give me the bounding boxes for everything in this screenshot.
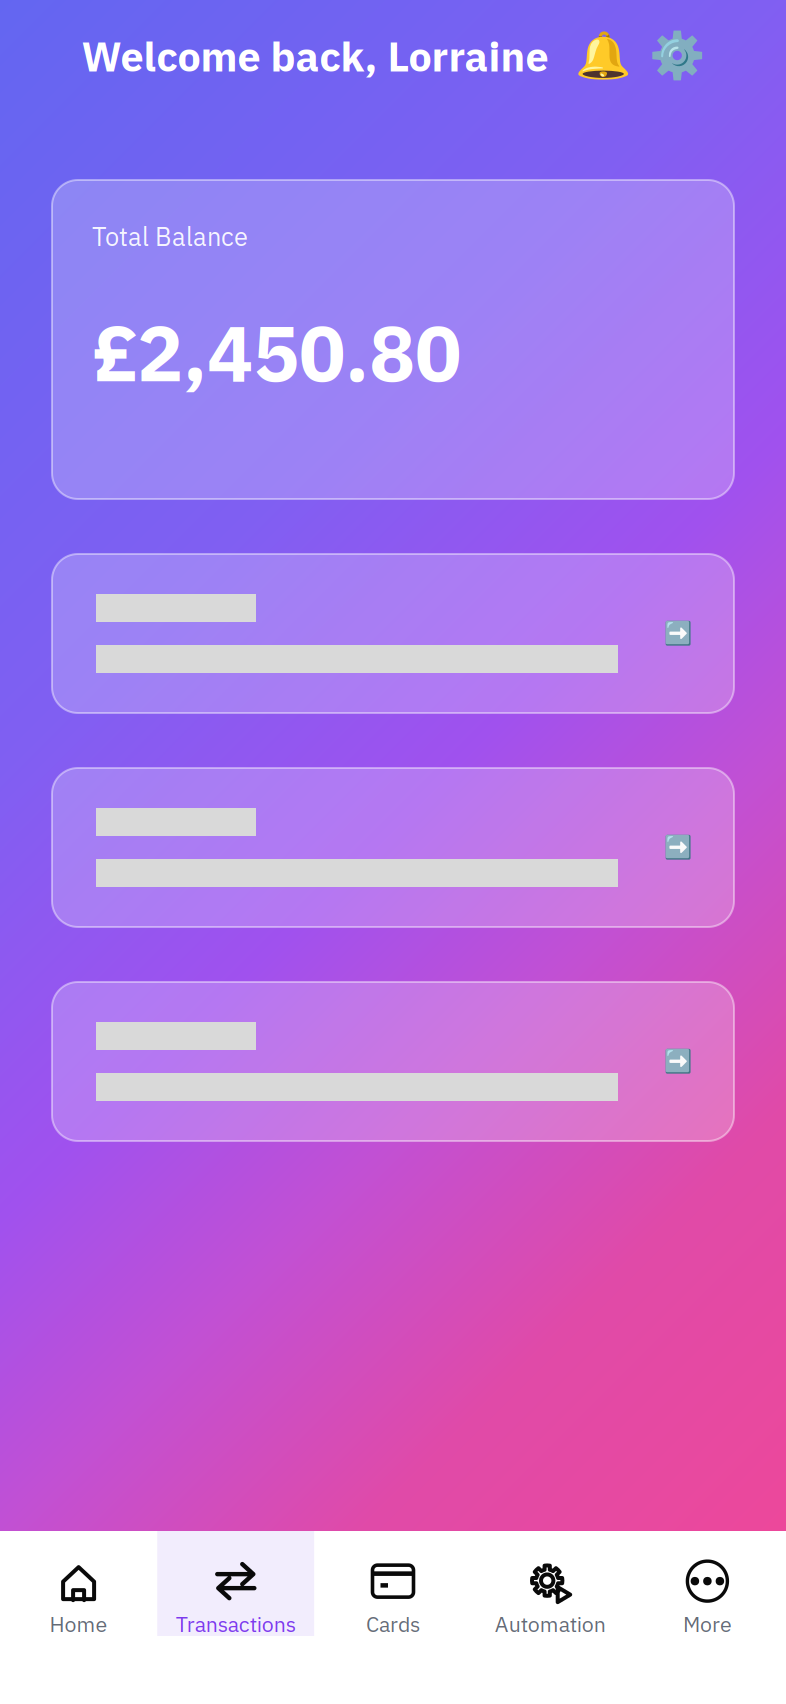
button[interactable]: Settings [648, 29, 704, 82]
staticText: ⚙️ [648, 29, 704, 82]
button[interactable]: ➡️ [52, 768, 734, 927]
staticText: £2,450.80 [92, 302, 461, 402]
staticText: ➡️ [664, 834, 692, 861]
button[interactable]: Home [0, 1531, 157, 1636]
staticText: Home [50, 1610, 108, 1638]
staticText: Automation [495, 1610, 606, 1638]
staticText: 🔔 [574, 29, 630, 82]
button[interactable]: Cards [314, 1531, 472, 1636]
button[interactable]: ➡️ [52, 554, 734, 713]
staticText: ➡️ [664, 1048, 692, 1075]
staticText: Welcome back, Lorraine [81, 29, 548, 83]
staticText: Total Balance [92, 220, 248, 253]
staticText: Cards [366, 1610, 420, 1638]
staticText: ➡️ [664, 620, 692, 647]
button[interactable]: Transactions [157, 1531, 314, 1636]
staticText: Transactions [176, 1610, 296, 1638]
button[interactable]: Automation [472, 1531, 629, 1636]
button[interactable]: Notifications [574, 29, 630, 82]
staticText: More [683, 1610, 732, 1638]
button[interactable]: ➡️ [52, 982, 734, 1141]
button[interactable]: More [629, 1531, 786, 1636]
